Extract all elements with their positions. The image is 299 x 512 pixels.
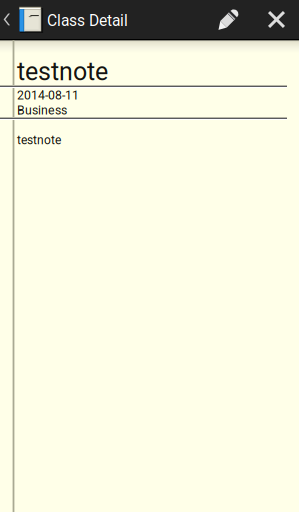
staticText: testnote bbox=[17, 57, 108, 86]
staticText: Business bbox=[17, 103, 67, 117]
button[interactable]: Close bbox=[255, 0, 298, 39]
staticText: testnote bbox=[17, 133, 61, 147]
staticText: Class Detail bbox=[47, 12, 128, 30]
staticText: 2014-08-11 bbox=[17, 88, 79, 102]
button[interactable]: Navigate up bbox=[0, 0, 45, 39]
button[interactable]: Edit note bbox=[208, 0, 252, 39]
